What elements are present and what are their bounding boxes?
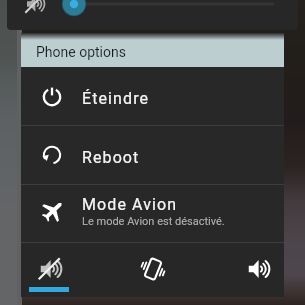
button[interactable]: Sound on [235, 243, 279, 297]
button[interactable]: Éteindre [21, 67, 284, 125]
staticText: Éteindre [82, 89, 150, 108]
button[interactable]: Reboot [21, 126, 284, 184]
button[interactable]: Mode Avion [21, 185, 284, 242]
button[interactable]: Silent mode [27, 243, 71, 297]
staticText: Phone options [36, 44, 126, 60]
staticText: Le mode Avion est désactivé. [82, 215, 225, 228]
staticText: Reboot [82, 148, 140, 167]
staticText: Mode Avion [82, 195, 178, 214]
button[interactable]: Vibrate mode [131, 243, 175, 297]
button[interactable]: Volume [7, 0, 298, 30]
